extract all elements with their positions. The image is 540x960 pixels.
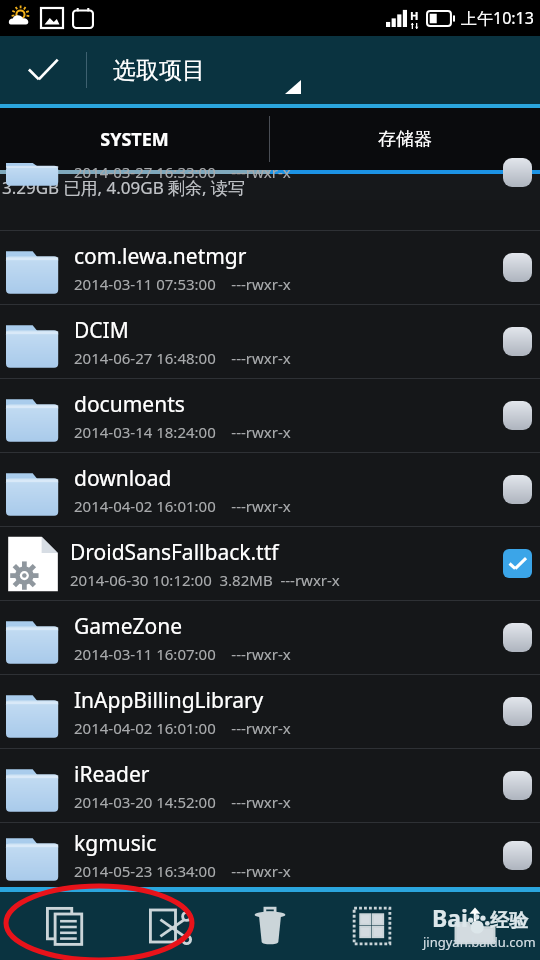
staticText: 2014-04-02 16:01:00 ---rwxr-x <box>74 496 291 516</box>
staticText: 上午10:13 <box>461 7 534 29</box>
button[interactable]: Confirm selection <box>0 36 86 104</box>
button[interactable]: Not selected <box>494 453 540 526</box>
button[interactable]: Not selected <box>494 157 540 187</box>
staticText: DCIM <box>74 316 129 345</box>
staticText: 存储器 <box>378 128 432 151</box>
staticText: 2014-03-14 18:24:00 ---rwxr-x <box>74 422 291 442</box>
staticText: 2014-03-27 16:33:00 ---rwxr-x <box>74 162 291 182</box>
staticText: kgmusic <box>74 829 157 858</box>
button[interactable]: Delete <box>233 892 307 960</box>
button[interactable]: documents <box>0 379 540 452</box>
button[interactable]: Cut <box>131 892 205 960</box>
button[interactable]: Not selected <box>494 749 540 822</box>
button[interactable]: Not selected <box>494 305 540 378</box>
staticText: documents <box>74 390 185 419</box>
button[interactable]: Select all <box>335 892 409 960</box>
staticText: 2014-06-27 16:48:00 ---rwxr-x <box>74 348 291 368</box>
staticText: 选取项目 <box>113 56 205 85</box>
staticText: com.lewa.netmgr <box>74 242 247 271</box>
button[interactable]: 选取项目 <box>87 36 540 104</box>
staticText: jingyan.baidu.com <box>423 933 536 951</box>
staticText: GameZone <box>74 612 183 641</box>
staticText: SYSTEM <box>100 127 169 152</box>
staticText: 2014-06-30 10:12:00 3.82MB ---rwxr-x <box>70 570 340 590</box>
staticText: Bai <box>432 902 468 933</box>
staticText: InAppBillingLibrary <box>74 686 264 715</box>
button[interactable]: Not selected <box>494 675 540 748</box>
button[interactable]: Copy <box>28 892 102 960</box>
staticText: DroidSansFallback.ttf <box>70 538 279 567</box>
staticText: iReader <box>74 760 150 789</box>
button[interactable]: Move to <box>438 892 512 960</box>
button[interactable]: download <box>0 453 540 526</box>
staticText: download <box>74 464 172 493</box>
button[interactable]: iReader <box>0 749 540 822</box>
button[interactable]: Not selected <box>494 823 540 887</box>
staticText: H <box>410 8 419 23</box>
staticText: 3.29GB 已用, 4.09GB 剩余, 读写 <box>2 176 246 199</box>
button[interactable]: SYSTEM <box>0 108 269 170</box>
button[interactable]: com.lewa.netmgr <box>0 231 540 304</box>
button[interactable]: DroidSansFallback.ttf <box>0 527 540 600</box>
button[interactable]: Not selected <box>494 231 540 304</box>
button[interactable]: Not selected <box>494 379 540 452</box>
button[interactable]: GameZone <box>0 601 540 674</box>
button[interactable]: 存储器 <box>270 108 540 170</box>
staticText: 经验 <box>490 909 528 933</box>
button[interactable]: Not selected <box>494 601 540 674</box>
staticText: 2014-04-02 16:01:00 ---rwxr-x <box>74 718 291 738</box>
staticText: 2014-03-11 16:07:00 ---rwxr-x <box>74 644 291 664</box>
staticText: 2014-05-23 16:34:00 ---rwxr-x <box>74 861 291 881</box>
staticText: 2014-03-20 14:52:00 ---rwxr-x <box>74 792 291 812</box>
button[interactable]: InAppBillingLibrary <box>0 675 540 748</box>
button[interactable]: DCIM <box>0 305 540 378</box>
button[interactable]: kgmusic <box>0 823 540 887</box>
staticText: 2014-03-11 07:53:00 ---rwxr-x <box>74 274 291 294</box>
button[interactable]: Selected <box>494 527 540 600</box>
